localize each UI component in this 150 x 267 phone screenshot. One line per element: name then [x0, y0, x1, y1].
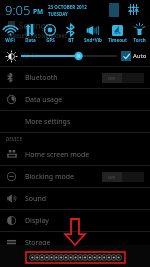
staticText: BT: [68, 37, 74, 43]
button[interactable]: Data usage: [0, 89, 150, 110]
button[interactable]: Home screen mode: [0, 144, 150, 165]
staticText: Storage: [25, 238, 51, 248]
staticText: Auto: [133, 52, 147, 60]
button[interactable]: Power saving: [0, 254, 150, 267]
staticText: Bluetooth: [25, 73, 58, 83]
staticText: 23 OCTOBER 2012: [48, 4, 87, 10]
button[interactable]: OFF: [102, 172, 144, 182]
staticText: TUESDAY: [48, 11, 68, 17]
staticText: Data: [25, 37, 36, 43]
staticText: Power saving: [25, 256, 69, 266]
button[interactable]: Auto: [121, 51, 147, 61]
staticText: Sound: [25, 194, 47, 204]
staticText: Display: [25, 216, 49, 226]
button[interactable]: [21, 49, 117, 63]
button[interactable]: Brightness: [4, 49, 18, 63]
staticText: DEVICE: [6, 136, 22, 142]
staticText: 9:05: [5, 1, 31, 19]
button[interactable]: Sound: [0, 188, 150, 209]
staticText: Wi-Fi: [22, 51, 37, 60]
button[interactable]: OFF: [102, 73, 144, 83]
staticText: 30s: [114, 30, 121, 35]
button[interactable]: Data: [20, 19, 40, 46]
staticText: OFF: [108, 175, 116, 180]
button[interactable]: Bluetooth: [0, 67, 150, 88]
staticText: Data usage: [25, 95, 63, 105]
button[interactable]: Display: [0, 210, 150, 231]
staticText: WiFi: [5, 37, 15, 43]
staticText: PM: [33, 7, 44, 16]
staticText: GPS: [46, 37, 55, 43]
staticText: WIRELESS AND NETWORKS: [8, 33, 68, 39]
staticText: OFF: [108, 259, 116, 264]
staticText: More settings: [25, 117, 71, 127]
button[interactable]: GPS: [40, 19, 60, 46]
staticText: Torch: [133, 37, 146, 43]
button[interactable]: Storage: [0, 232, 150, 253]
button[interactable]: 30s: [105, 19, 129, 46]
staticText: Settings: [19, 20, 50, 31]
button[interactable]: WiFi: [0, 19, 20, 46]
staticText: Home screen mode: [25, 150, 90, 160]
button[interactable]: Snd+Vib: [81, 19, 105, 46]
staticText: Snd+Vib: [84, 37, 102, 43]
button[interactable]: OFF: [102, 256, 144, 266]
button[interactable]: Settings shortcut: [123, 0, 143, 19]
button[interactable]: Torch: [129, 19, 150, 46]
button[interactable]: BT: [60, 19, 81, 46]
staticText: OFF: [108, 76, 116, 81]
staticText: Blocking mode: [25, 172, 74, 182]
button[interactable]: Blocking mode: [0, 166, 150, 187]
button[interactable]: More settings: [0, 111, 150, 132]
staticText: Timeout: [108, 37, 127, 43]
